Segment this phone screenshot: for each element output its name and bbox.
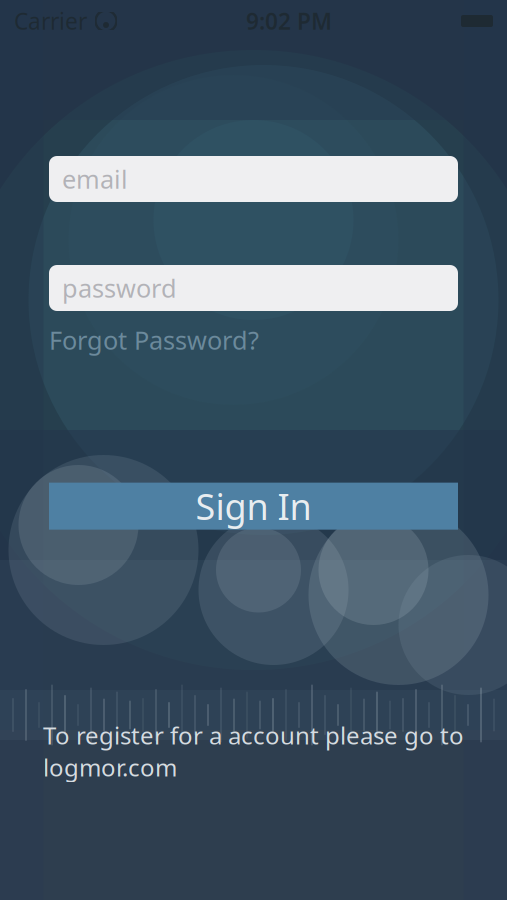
button[interactable]: Forgot Password? [49,311,259,361]
staticText: password [62,271,177,305]
button[interactable]: password [49,265,458,311]
staticText: Forgot Password? [49,323,259,357]
staticText: Carrier [14,6,87,36]
staticText: 9:02 PM [246,6,332,36]
staticText: Sign In [195,482,311,530]
staticText: email [62,162,128,196]
staticText: To register for a account please go to l… [43,719,464,783]
button[interactable]: email [49,156,458,202]
button[interactable]: Sign In [49,483,458,530]
